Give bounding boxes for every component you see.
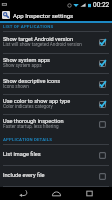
staticText: Use thorough inspection	[3, 118, 64, 125]
button[interactable]: Home	[46, 187, 66, 200]
staticText: Show system apps	[3, 57, 50, 64]
staticText: APPLICATION DETAILS	[3, 137, 53, 142]
staticText: Use color to show app type	[3, 98, 71, 105]
button[interactable]: List image files	[0, 145, 112, 166]
button[interactable]: Recent apps	[79, 187, 99, 200]
staticText: App Inspector settings	[13, 12, 74, 19]
staticText: List image files	[3, 151, 41, 158]
button[interactable]: Use color to show app type	[0, 95, 112, 115]
staticText: 00:22	[93, 1, 110, 9]
staticText: LIST OF APPLICATIONS	[3, 24, 54, 29]
button[interactable]: Show descriptive icons	[0, 74, 112, 95]
button[interactable]: App Inspector settings	[0, 9, 112, 21]
staticText: Color indicates category	[3, 104, 53, 109]
button[interactable]: Include every file	[0, 166, 112, 187]
staticText: Icons shown	[3, 84, 29, 89]
staticText: List will show targeted Android version	[3, 42, 82, 47]
staticText: Include every file	[3, 172, 45, 179]
staticText: Show descriptive icons	[3, 78, 61, 85]
staticText: Show system apps	[3, 63, 42, 68]
button[interactable]: Use thorough inspection	[0, 115, 112, 134]
button[interactable]: Show target Android version	[0, 32, 112, 54]
button[interactable]: Show system apps	[0, 54, 112, 74]
staticText: Faster startup, less filtering	[3, 124, 59, 129]
button[interactable]: Back	[13, 187, 33, 200]
staticText: Show target Android version	[3, 36, 74, 43]
